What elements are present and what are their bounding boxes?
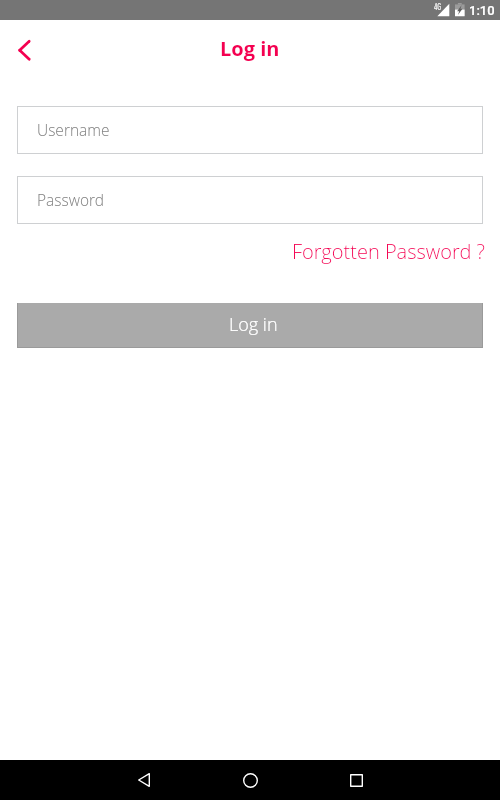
staticText: Log in [229,312,278,337]
staticText: 1:10 [469,3,495,18]
button[interactable]: Log in [17,303,483,348]
button[interactable]: Recents [332,760,380,800]
button[interactable]: Back [120,760,168,800]
staticText: 4G [434,1,441,12]
staticText: Username [37,119,110,140]
button[interactable]: Home [226,760,274,800]
button[interactable]: Username [17,106,483,154]
button[interactable]: Back [6,30,42,66]
staticText: Password [37,189,104,210]
staticText: Forgotten Password ? [292,238,485,264]
button[interactable]: Forgotten Password ? [17,238,485,264]
staticText: Log in [220,35,280,62]
button[interactable]: Password [17,176,483,224]
